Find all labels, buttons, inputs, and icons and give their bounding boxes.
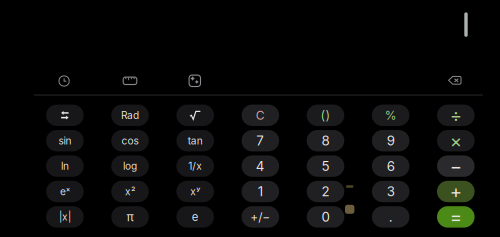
staticText: + (450, 180, 462, 203)
staticText: 1/x (188, 160, 202, 172)
staticText: 9 (387, 133, 395, 149)
button[interactable]: 7 (242, 130, 279, 151)
button[interactable]: 4 (242, 155, 279, 177)
button[interactable]: − (437, 155, 475, 177)
button[interactable]: 1 (242, 181, 279, 202)
staticText: ln (61, 160, 69, 172)
staticText: log (123, 160, 137, 172)
button[interactable]: 5 (307, 155, 344, 177)
button[interactable]: Math Notes (188, 74, 201, 87)
button[interactable]: Delete (447, 75, 462, 86)
staticText: 2 (321, 183, 329, 199)
staticText: C (256, 108, 265, 122)
staticText: 7 (256, 133, 264, 149)
button[interactable]: +/− (242, 206, 279, 228)
button[interactable]: × (437, 130, 475, 151)
button[interactable]: e (176, 206, 214, 228)
button[interactable]: x² (111, 181, 149, 202)
button[interactable]: ÷ (437, 105, 475, 126)
staticText: eˣ (60, 185, 70, 198)
button[interactable]: xʸ (176, 181, 214, 202)
button[interactable]: % (372, 105, 409, 126)
staticText: = (450, 206, 462, 228)
staticText: tan (188, 135, 203, 147)
staticText: |x| (59, 211, 71, 223)
button[interactable]: Swap operands (46, 105, 84, 126)
button[interactable]: 8 (307, 130, 344, 151)
button[interactable]: = (437, 206, 475, 228)
staticText: x² (125, 185, 135, 198)
button[interactable]: C (242, 105, 279, 126)
staticText: Rad (121, 109, 139, 121)
staticText: 0 (321, 209, 329, 225)
button[interactable]: Rad (111, 105, 149, 126)
staticText: xʸ (190, 185, 200, 198)
staticText: 5 (321, 158, 329, 174)
button[interactable]: Convert (122, 76, 137, 86)
staticText: 6 (387, 158, 395, 174)
staticText: cos (122, 135, 139, 147)
button[interactable]: 3 (372, 181, 409, 202)
button[interactable]: 6 (372, 155, 409, 177)
staticText: % (385, 108, 397, 122)
button[interactable]: History (58, 74, 71, 87)
staticText: 1 (258, 183, 263, 199)
staticText: . (389, 209, 393, 225)
staticText: 4 (256, 158, 265, 174)
button[interactable]: 1/x (176, 155, 214, 177)
button[interactable]: 0 (307, 206, 344, 228)
staticText: ÷ (450, 104, 462, 127)
staticText: × (450, 129, 462, 152)
staticText: sin (58, 135, 71, 147)
button[interactable]: sin (46, 130, 84, 151)
button[interactable]: . (372, 206, 409, 228)
button[interactable]: cos (111, 130, 149, 151)
button[interactable]: π (111, 206, 149, 228)
staticText: 3 (387, 183, 395, 199)
button[interactable]: Square root (176, 105, 214, 126)
staticText: e (192, 210, 199, 224)
button[interactable]: |x| (46, 206, 84, 228)
button[interactable]: eˣ (46, 181, 84, 202)
button[interactable]: () (307, 105, 344, 126)
staticText: 8 (321, 133, 329, 149)
button[interactable]: 9 (372, 130, 409, 151)
button[interactable]: 2 (307, 181, 344, 202)
button[interactable]: tan (176, 130, 214, 151)
button[interactable]: log (111, 155, 149, 177)
staticText: +/− (250, 210, 270, 224)
button[interactable]: + (437, 181, 475, 202)
button[interactable]: ln (46, 155, 84, 177)
staticText: π (127, 210, 134, 224)
staticText: () (320, 108, 330, 123)
staticText: − (450, 155, 462, 177)
